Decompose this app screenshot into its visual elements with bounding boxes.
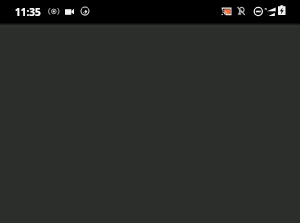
- staticText: 11:35: [15, 5, 41, 19]
